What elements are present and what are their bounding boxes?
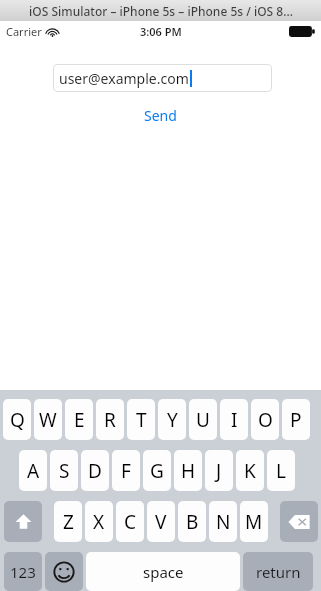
staticText: H xyxy=(181,458,196,484)
staticText: Send xyxy=(144,106,177,125)
button[interactable]: 123 xyxy=(4,552,42,591)
staticText: O xyxy=(258,407,273,433)
staticText: Q xyxy=(10,407,25,433)
button[interactable]: Shift xyxy=(4,501,42,542)
staticText: R xyxy=(104,407,116,433)
button[interactable]: L xyxy=(267,450,295,491)
staticText: return xyxy=(256,562,301,582)
staticText: B xyxy=(186,509,199,535)
staticText: D xyxy=(88,458,102,484)
button[interactable]: Y xyxy=(158,399,186,440)
staticText: N xyxy=(216,509,231,535)
button[interactable]: G xyxy=(143,450,171,491)
staticText: L xyxy=(276,458,286,484)
staticText: M xyxy=(245,509,263,535)
button[interactable]: T xyxy=(127,399,155,440)
button[interactable]: U xyxy=(189,399,217,440)
staticText: A xyxy=(27,458,40,484)
staticText: 3:06 PM xyxy=(140,24,182,39)
button[interactable]: Send xyxy=(136,104,185,127)
button[interactable]: I xyxy=(220,399,248,440)
button[interactable]: W xyxy=(34,399,62,440)
staticText: J xyxy=(216,458,222,484)
staticText: W xyxy=(39,407,57,433)
staticText: Z xyxy=(63,509,74,535)
staticText: S xyxy=(59,458,70,484)
staticText: Carrier xyxy=(6,24,42,39)
staticText: G xyxy=(150,458,164,484)
staticText: iOS Simulator – iPhone 5s – iPhone 5s / … xyxy=(29,3,293,19)
button[interactable]: H xyxy=(174,450,202,491)
button[interactable]: S xyxy=(50,450,78,491)
staticText: Y xyxy=(167,407,178,433)
button[interactable]: N xyxy=(209,501,237,542)
button[interactable]: D xyxy=(81,450,109,491)
staticText: X xyxy=(93,509,105,535)
staticText: V xyxy=(155,509,167,535)
button[interactable]: V xyxy=(147,501,175,542)
button[interactable]: space xyxy=(86,552,240,591)
button[interactable]: X xyxy=(85,501,113,542)
button[interactable]: Delete xyxy=(280,501,318,542)
staticText: K xyxy=(244,458,256,484)
button[interactable]: user@example.com xyxy=(53,64,272,92)
staticText: U xyxy=(196,407,210,433)
staticText: F xyxy=(121,458,131,484)
button[interactable]: Emoji keyboard xyxy=(45,552,83,591)
staticText: T xyxy=(136,407,147,433)
button[interactable]: B xyxy=(178,501,206,542)
button[interactable]: P xyxy=(282,399,310,440)
button[interactable]: C xyxy=(116,501,144,542)
staticText: user@example.com xyxy=(59,69,189,88)
button[interactable]: O xyxy=(251,399,279,440)
button[interactable]: R xyxy=(96,399,124,440)
staticText: I xyxy=(231,407,238,433)
button[interactable]: A xyxy=(19,450,47,491)
button[interactable]: Z xyxy=(54,501,82,542)
staticText: C xyxy=(124,509,137,535)
button[interactable]: F xyxy=(112,450,140,491)
button[interactable]: M xyxy=(240,501,268,542)
button[interactable]: J xyxy=(205,450,233,491)
staticText: E xyxy=(74,407,85,433)
button[interactable]: K xyxy=(236,450,264,491)
staticText: 123 xyxy=(10,562,36,582)
staticText: space xyxy=(143,562,184,582)
button[interactable]: return xyxy=(243,552,313,591)
button[interactable]: E xyxy=(65,399,93,440)
staticText: P xyxy=(290,407,302,433)
button[interactable]: Q xyxy=(3,399,31,440)
